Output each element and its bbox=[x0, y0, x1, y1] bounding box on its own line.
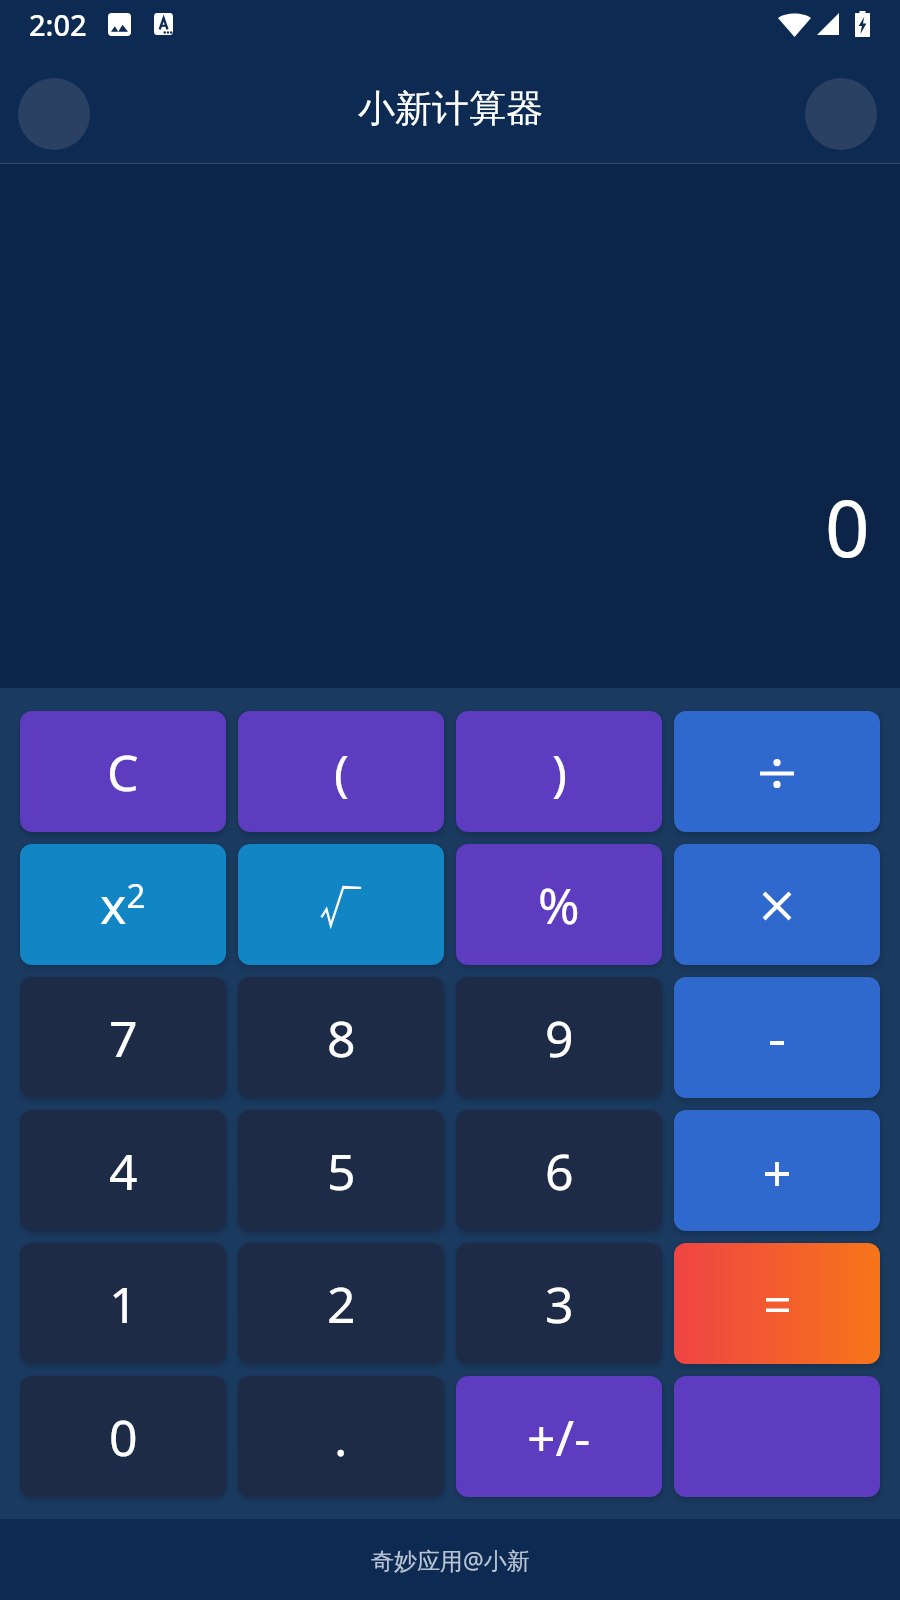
button[interactable]: Menu bbox=[18, 78, 90, 150]
button[interactable]: . bbox=[238, 1376, 444, 1497]
button[interactable]: Divide bbox=[674, 711, 880, 832]
button[interactable]: x2 bbox=[20, 844, 226, 965]
button[interactable]: 2 bbox=[238, 1243, 444, 1364]
button[interactable]: ( bbox=[238, 711, 444, 832]
button[interactable]: 8 bbox=[238, 977, 444, 1098]
staticText: 小新计算器 bbox=[358, 85, 543, 132]
button[interactable]: Multiply bbox=[674, 844, 880, 965]
staticText: ( bbox=[334, 738, 349, 806]
staticText: 3 bbox=[545, 1270, 574, 1338]
staticText: 7 bbox=[109, 1004, 138, 1072]
button[interactable]: History bbox=[805, 78, 877, 150]
button[interactable]: Backspace bbox=[674, 1376, 880, 1497]
staticText: 6 bbox=[545, 1137, 574, 1205]
staticText: 8 bbox=[327, 1004, 356, 1072]
staticText: C bbox=[107, 738, 139, 806]
button[interactable]: 5 bbox=[238, 1110, 444, 1231]
button[interactable]: Add bbox=[674, 1110, 880, 1231]
button[interactable]: 7 bbox=[20, 977, 226, 1098]
staticText: 1 bbox=[109, 1270, 138, 1338]
staticText: ) bbox=[552, 738, 567, 806]
button[interactable]: 4 bbox=[20, 1110, 226, 1231]
button[interactable]: Square root bbox=[238, 844, 444, 965]
staticText: 5 bbox=[327, 1137, 356, 1205]
staticText: x2 bbox=[100, 871, 146, 939]
staticText: % bbox=[538, 871, 580, 939]
button[interactable]: 0 bbox=[20, 1376, 226, 1497]
staticText: 9 bbox=[545, 1004, 574, 1072]
button[interactable]: % bbox=[456, 844, 662, 965]
staticText: 4 bbox=[109, 1137, 138, 1205]
staticText: 0 bbox=[825, 474, 870, 580]
button[interactable]: 3 bbox=[456, 1243, 662, 1364]
staticText: 0 bbox=[109, 1403, 138, 1471]
button[interactable]: +/- bbox=[456, 1376, 662, 1497]
staticText: 奇妙应用@小新 bbox=[371, 1544, 530, 1575]
button[interactable]: Equals bbox=[674, 1243, 880, 1364]
staticText: 2 bbox=[327, 1270, 356, 1338]
button[interactable]: ) bbox=[456, 711, 662, 832]
button[interactable]: C bbox=[20, 711, 226, 832]
button[interactable]: 6 bbox=[456, 1110, 662, 1231]
staticText: +/- bbox=[527, 1403, 591, 1471]
button[interactable]: Subtract bbox=[674, 977, 880, 1098]
button[interactable]: 1 bbox=[20, 1243, 226, 1364]
staticText: . bbox=[334, 1403, 348, 1471]
button[interactable]: 9 bbox=[456, 977, 662, 1098]
staticText: 2:02 bbox=[29, 5, 87, 44]
